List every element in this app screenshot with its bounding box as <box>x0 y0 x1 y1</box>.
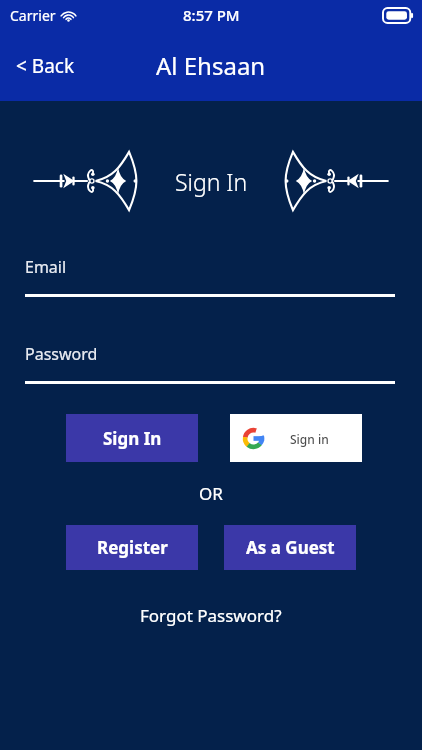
staticText: Al Ehsaan <box>156 49 266 82</box>
staticText: 8:57 PM <box>183 5 240 25</box>
button[interactable]: < Back <box>0 43 91 89</box>
staticText: Sign in <box>290 431 329 447</box>
button[interactable]: Sign In <box>66 414 198 462</box>
button[interactable]: Sign in <box>230 414 362 462</box>
staticText: OR <box>0 482 422 505</box>
staticText: Carrier <box>10 6 56 25</box>
button[interactable]: Forgot Password? <box>126 598 296 633</box>
staticText: Password <box>25 343 98 365</box>
staticText: As a Guest <box>246 536 335 559</box>
staticText: Email <box>25 256 67 278</box>
button[interactable]: Email <box>25 256 395 297</box>
button[interactable]: Register <box>66 525 198 570</box>
button[interactable]: Password <box>25 343 395 384</box>
staticText: Sign In <box>103 427 162 450</box>
staticText: < Back <box>16 53 75 79</box>
staticText: Register <box>97 536 168 559</box>
staticText: Sign In <box>175 166 248 197</box>
staticText: Forgot Password? <box>140 604 282 627</box>
button[interactable]: As a Guest <box>224 525 356 570</box>
